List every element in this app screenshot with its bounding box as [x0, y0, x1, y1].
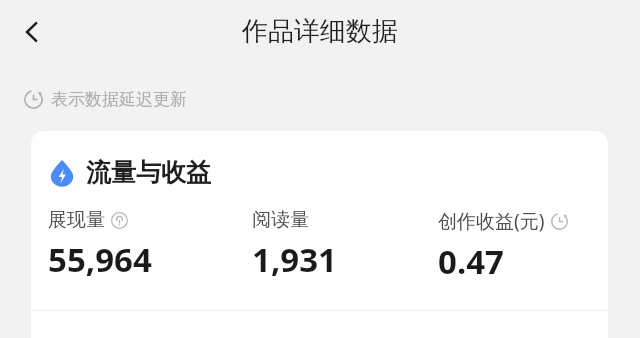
- staticText: 0.47: [438, 239, 504, 284]
- button[interactable]: Back: [6, 6, 58, 58]
- staticText: 流量与收益: [86, 157, 211, 188]
- button[interactable]: 创作收益(元): [438, 208, 568, 284]
- button[interactable]: 阅读量: [252, 208, 337, 282]
- staticText: 展现量: [48, 208, 105, 232]
- staticText: 1,931: [252, 237, 337, 282]
- staticText: 作品详细数据: [242, 15, 398, 48]
- staticText: 阅读量: [252, 208, 309, 232]
- staticText: 55,964: [48, 237, 152, 282]
- button[interactable]: 展现量: [48, 208, 152, 282]
- staticText: 创作收益(元): [438, 208, 545, 234]
- button[interactable]: 流量与收益: [48, 157, 211, 188]
- staticText: 表示数据延迟更新: [51, 89, 187, 110]
